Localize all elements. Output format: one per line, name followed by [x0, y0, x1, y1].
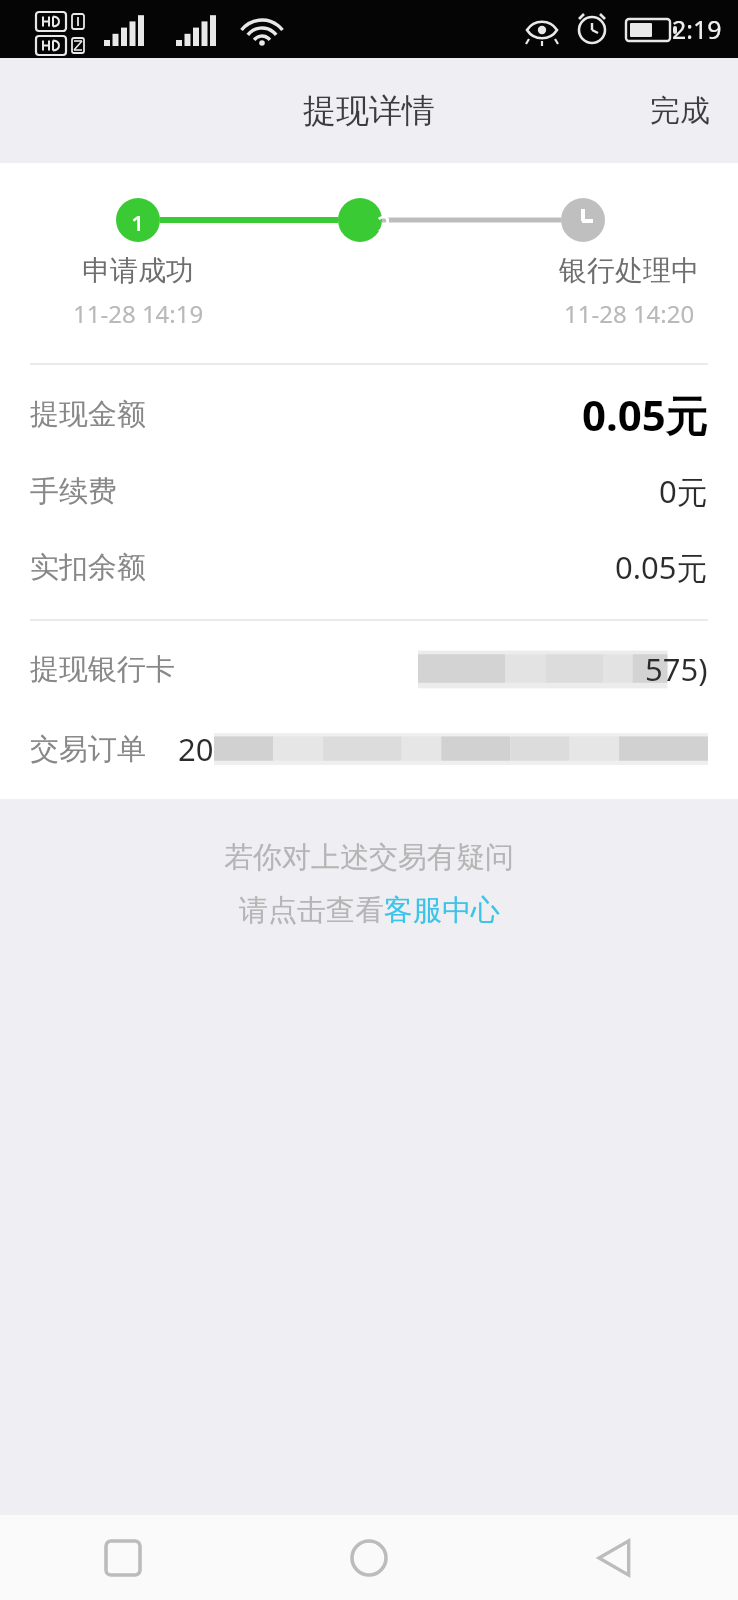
button[interactable]: 完成: [622, 74, 738, 148]
staticText: 若你对上述交易有疑问: [224, 839, 514, 876]
staticText: 2:19: [672, 12, 722, 46]
staticText: 实扣余额: [30, 549, 146, 586]
staticText: 11-28 14:19: [73, 297, 204, 330]
button[interactable]: Recents: [0, 1515, 246, 1600]
button[interactable]: Back: [492, 1515, 738, 1600]
staticText: 2: [377, 207, 391, 231]
staticText: 银行处理中: [559, 253, 699, 288]
button[interactable]: 实扣余额: [0, 529, 738, 605]
button[interactable]: 请点击查看客服中心: [239, 892, 500, 929]
staticText: 575): [645, 648, 708, 690]
staticText: 交易订单: [30, 731, 146, 768]
staticText: 0.05元: [582, 386, 708, 443]
button[interactable]: 交易订单: [0, 709, 738, 789]
staticText: 提现银行卡: [30, 651, 175, 688]
staticText: 1: [131, 207, 145, 231]
staticText: 20: [178, 728, 214, 770]
staticText: 0元: [659, 470, 708, 512]
button[interactable]: 提现银行卡: [0, 629, 738, 709]
button[interactable]: 提现金额: [0, 375, 738, 453]
staticText: 0.05元: [615, 546, 708, 588]
staticText: 手续费: [30, 473, 117, 510]
staticText: 11-28 14:20: [564, 297, 695, 330]
staticText: 申请成功: [82, 253, 194, 288]
button[interactable]: Home: [246, 1515, 492, 1600]
staticText: 请点击查看客服中心: [239, 892, 500, 929]
staticText: 完成: [650, 92, 710, 130]
button[interactable]: 手续费: [0, 453, 738, 529]
staticText: 提现详情: [303, 90, 435, 132]
staticText: 提现金额: [30, 396, 146, 433]
